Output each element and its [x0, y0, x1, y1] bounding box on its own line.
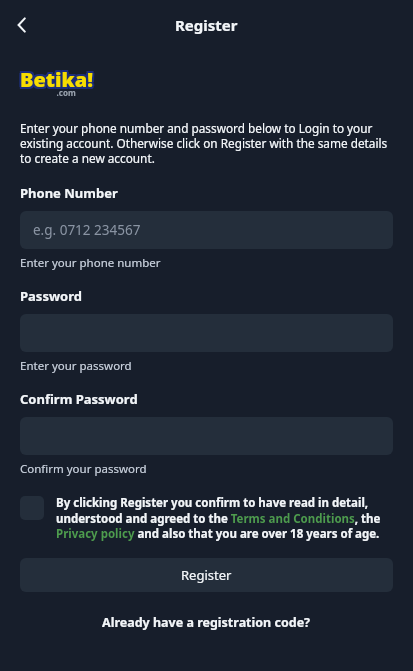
button[interactable]	[20, 558, 393, 592]
button[interactable]	[20, 614, 393, 631]
button[interactable]	[56, 495, 393, 542]
button[interactable]: Back	[3, 6, 41, 44]
button[interactable]	[20, 211, 393, 249]
